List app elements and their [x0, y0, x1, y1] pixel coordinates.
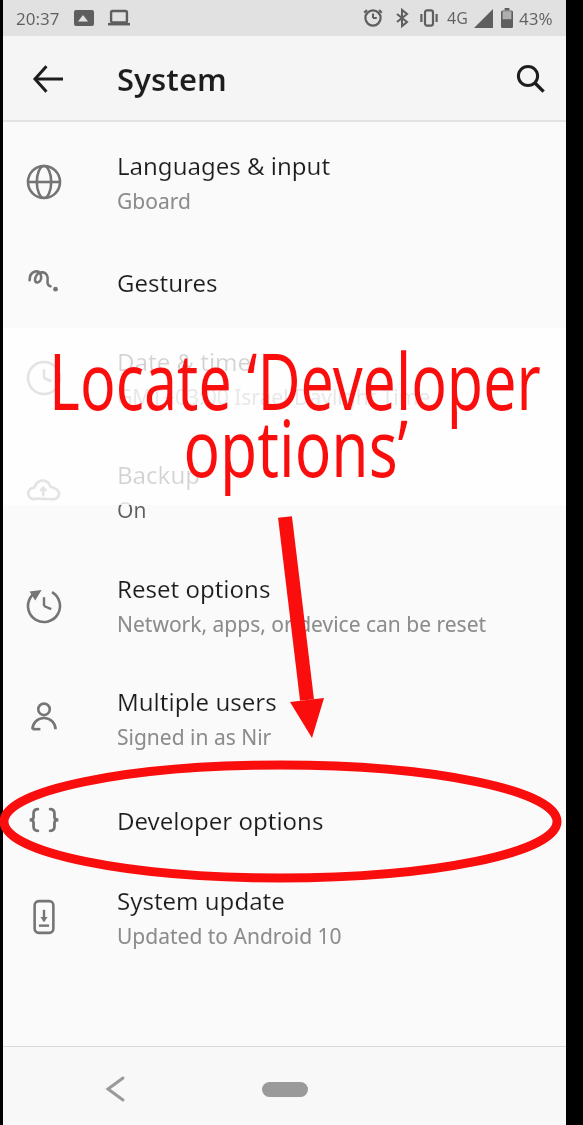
staticText: 43% [519, 7, 553, 30]
button[interactable]: Date & time [3, 322, 566, 434]
button[interactable]: Languages & input [3, 122, 566, 242]
staticText: options’ [183, 392, 408, 500]
staticText: System [117, 58, 227, 100]
button[interactable]: Multiple users [3, 662, 566, 774]
staticText: On [117, 496, 147, 525]
staticText: Reset options [117, 572, 271, 605]
staticText: System update [117, 884, 285, 917]
staticText: Backup [117, 458, 200, 491]
button[interactable]: Reset options [3, 549, 566, 662]
staticText: Gboard [117, 187, 191, 216]
staticText: 4G [447, 7, 468, 29]
button[interactable]: Gestures [3, 242, 566, 322]
staticText: 20:37 [16, 7, 60, 30]
staticText: Developer options [117, 804, 324, 837]
button[interactable]: Developer options [3, 774, 566, 866]
staticText: Languages & input [117, 149, 331, 182]
staticText: Updated to Android 10 [117, 922, 342, 951]
staticText: Multiple users [117, 685, 277, 718]
staticText: Network, apps, or device can be reset [117, 610, 487, 639]
button[interactable]: Backup [3, 435, 566, 548]
staticText: Signed in as Nir [117, 723, 272, 752]
button[interactable] [3, 36, 95, 122]
staticText: Locate ‘Developer [49, 325, 541, 433]
button[interactable] [496, 36, 566, 122]
button[interactable] [93, 1071, 137, 1107]
staticText: Gestures [117, 266, 218, 299]
button[interactable] [262, 1082, 308, 1097]
staticText: GMT+03:00 Israel Daylight Time [117, 383, 431, 412]
button[interactable]: System update [3, 861, 566, 973]
staticText: Date & time [117, 345, 252, 378]
